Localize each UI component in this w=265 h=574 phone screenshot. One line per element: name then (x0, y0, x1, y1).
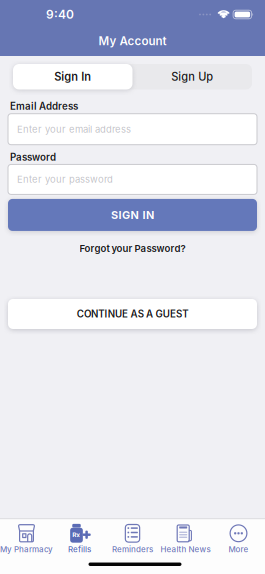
staticText: Health News (160, 545, 210, 554)
button[interactable]: Sign In (13, 64, 132, 89)
button[interactable]: Rx (53, 519, 106, 554)
button[interactable]: My Pharmacy (0, 519, 53, 554)
staticText: Forgot your Password? (79, 243, 185, 254)
staticText: Sign Up (171, 70, 213, 83)
staticText: CONTINUE AS A GUEST (77, 308, 188, 320)
staticText: SIGN IN (111, 209, 154, 221)
staticText: Password (10, 152, 56, 163)
button[interactable]: Forgot your Password? (79, 243, 185, 254)
button[interactable]: CONTINUE AS A GUEST (8, 299, 257, 329)
button[interactable]: More (212, 519, 265, 554)
button[interactable]: Reminders (106, 519, 159, 554)
staticText: Enter your password (17, 174, 113, 185)
staticText: My Account (98, 34, 166, 48)
staticText: Refills (68, 545, 91, 554)
button[interactable]: SIGN IN (8, 199, 257, 231)
staticText: My Pharmacy (0, 545, 53, 554)
staticText: 9:40 (46, 8, 74, 21)
staticText: Reminders (112, 545, 153, 554)
staticText: Rx (72, 531, 80, 539)
staticText: Email Address (10, 100, 78, 112)
button[interactable]: Sign Up (132, 64, 252, 89)
staticText: Enter your email address (17, 124, 131, 135)
staticText: More (228, 545, 248, 554)
button[interactable]: Health News (159, 519, 212, 554)
staticText: Sign In (54, 70, 91, 83)
